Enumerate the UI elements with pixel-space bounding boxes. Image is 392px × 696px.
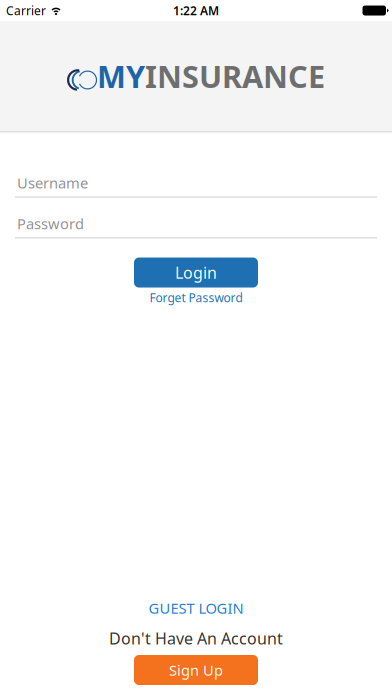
staticText: Username [17, 173, 88, 192]
button[interactable]: Forget Password [149, 290, 242, 305]
staticText: MY [97, 56, 145, 96]
button[interactable]: GUEST LOGIN [148, 598, 243, 618]
staticText: 1:22 AM [173, 2, 219, 18]
staticText: Forget Password [149, 290, 242, 305]
staticText: Password [17, 214, 84, 233]
staticText: Sign Up [169, 660, 223, 680]
staticText: Login [175, 262, 217, 283]
staticText: GUEST LOGIN [148, 598, 243, 618]
button[interactable]: Sign Up [134, 655, 258, 685]
staticText: INSURANCE [145, 56, 325, 96]
staticText: Don't Have An Account [109, 628, 283, 649]
staticText: Carrier [6, 2, 46, 18]
button[interactable]: Password [0, 214, 392, 239]
button[interactable]: Login [134, 258, 258, 288]
button[interactable]: Username [0, 173, 392, 198]
